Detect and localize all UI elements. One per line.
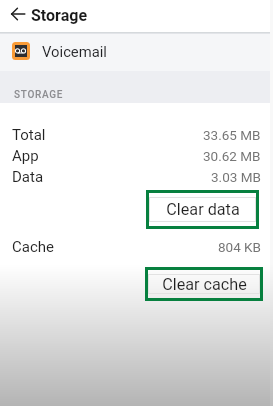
staticText: 804 KB	[218, 239, 261, 255]
staticText: 30.62 MB	[203, 148, 261, 164]
button[interactable]: Cache	[0, 236, 270, 257]
staticText: Voicemail	[42, 43, 107, 60]
button[interactable]: Back	[6, 1, 30, 25]
staticText: STORAGE	[14, 89, 64, 101]
staticText: Data	[12, 168, 44, 186]
button[interactable]: Voicemail	[0, 32, 270, 70]
staticText: Clear data	[166, 200, 240, 219]
button[interactable]: App	[0, 145, 270, 166]
staticText: 3.03 MB	[211, 169, 261, 185]
staticText: Storage	[31, 6, 88, 25]
button[interactable]: Data	[0, 166, 270, 187]
button[interactable]: Total	[0, 124, 270, 145]
button[interactable]: Clear cache	[148, 274, 260, 294]
button[interactable]: Clear data	[149, 197, 256, 222]
staticText: Clear cache	[162, 275, 247, 294]
staticText: Total	[12, 126, 46, 144]
staticText: Cache	[12, 238, 54, 256]
staticText: App	[12, 147, 39, 165]
staticText: 33.65 MB	[203, 127, 261, 143]
